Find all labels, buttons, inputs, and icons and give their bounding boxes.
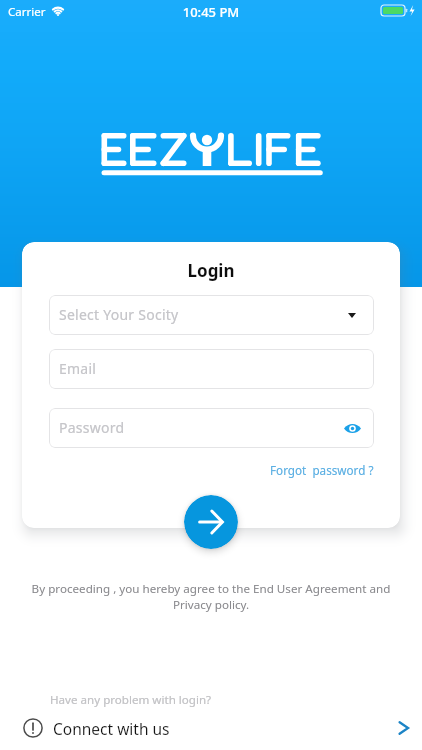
button[interactable]: Submit bbox=[184, 495, 238, 549]
staticText: Email bbox=[59, 359, 97, 378]
other: Wi-Fi bbox=[50, 5, 66, 16]
staticText: Carrier bbox=[8, 4, 46, 20]
button[interactable]: Forgot password ? bbox=[270, 462, 374, 478]
button[interactable]: Email bbox=[49, 349, 374, 389]
staticText: Select Your Socity bbox=[59, 305, 179, 324]
staticText: Have any problem with login? bbox=[50, 692, 212, 708]
staticText: Connect with us bbox=[53, 718, 170, 739]
staticText: Login bbox=[22, 259, 400, 282]
button[interactable]: Select Your Socity bbox=[49, 295, 374, 335]
staticText: By proceeding , you hereby agree to the … bbox=[24, 581, 398, 612]
other: Open bbox=[394, 719, 412, 737]
other: Show password bbox=[344, 423, 361, 434]
staticText: Password bbox=[59, 418, 125, 437]
staticText: 10:45 PM bbox=[0, 3, 422, 21]
button[interactable]: Connect with us bbox=[0, 709, 422, 747]
button[interactable]: Password bbox=[49, 408, 374, 448]
